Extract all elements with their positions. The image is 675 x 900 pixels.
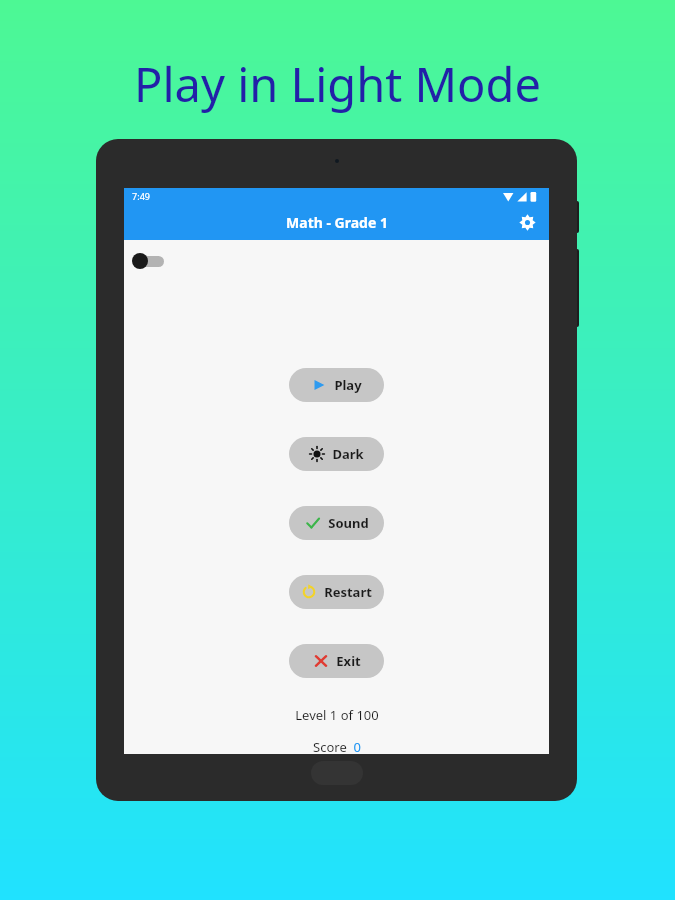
button[interactable]: Restart — [289, 575, 384, 609]
staticText: 7:49 — [132, 190, 150, 202]
button[interactable]: Exit — [289, 644, 384, 678]
button[interactable]: Toggle — [132, 252, 166, 270]
staticText: Play in Light Mode — [134, 52, 541, 116]
staticText: Level 1 of 100 — [295, 706, 379, 724]
staticText: Play — [334, 376, 362, 394]
staticText: Dark — [332, 445, 364, 463]
staticText: Sound — [328, 514, 369, 532]
staticText: Restart — [324, 583, 372, 601]
staticText: Score 0 — [313, 738, 361, 754]
button[interactable]: Sound — [289, 506, 384, 540]
button[interactable]: Settings — [513, 208, 541, 236]
staticText: Exit — [336, 652, 361, 670]
button[interactable]: Play — [289, 368, 384, 402]
button[interactable]: Dark — [289, 437, 384, 471]
staticText: Math - Grade 1 — [286, 213, 388, 232]
